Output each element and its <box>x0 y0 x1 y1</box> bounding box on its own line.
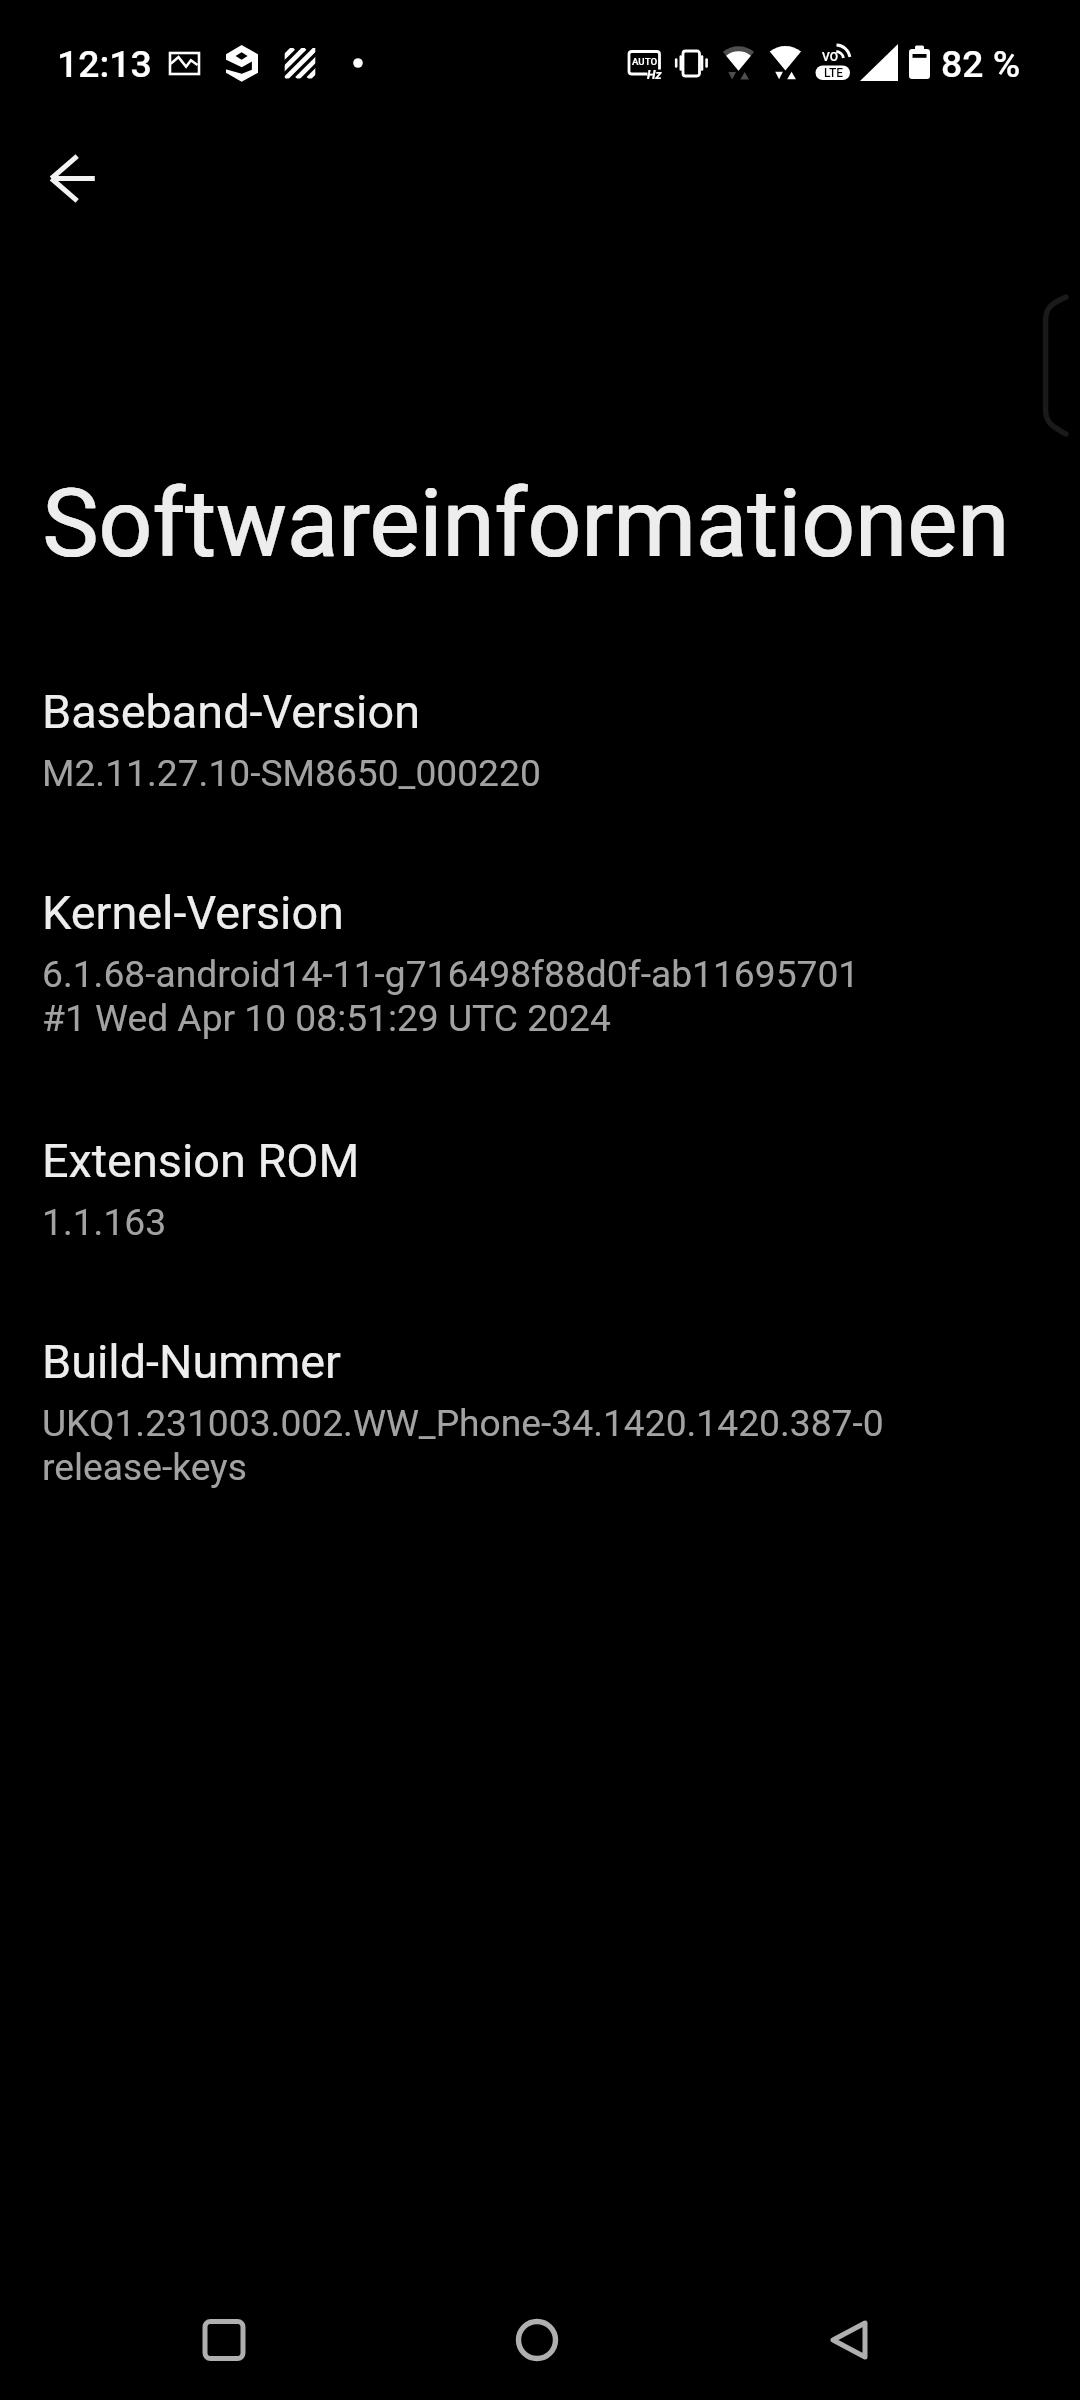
staticText: UKQ1.231003.002.WW_Phone-34.1420.1420.38… <box>42 1401 884 1445</box>
button[interactable]: Back <box>30 136 116 222</box>
staticText: Softwareinformationen <box>43 468 1010 579</box>
button[interactable]: Recent apps <box>154 2270 294 2400</box>
staticText: 12:13 <box>57 42 152 86</box>
staticText: LTE <box>824 66 844 80</box>
staticText: release-keys <box>42 1445 247 1489</box>
button[interactable]: Kernel-Version <box>0 864 1080 1062</box>
staticText: Kernel-Version <box>42 886 344 941</box>
staticText: Baseband-Version <box>42 685 421 740</box>
staticText: 6.1.68-android14-11-g716498f88d0f-ab1169… <box>42 952 860 996</box>
button[interactable]: Home <box>467 2270 607 2400</box>
staticText: Extension ROM <box>42 1134 360 1189</box>
button[interactable]: Extension ROM <box>0 1112 1080 1266</box>
staticText: Softwareinformationen <box>42 468 1009 579</box>
staticText: #1 Wed Apr 10 08:51:29 UTC 2024 <box>42 996 611 1040</box>
staticText: 1.1.163 <box>42 1200 167 1244</box>
button[interactable]: Baseband-Version <box>0 663 1080 817</box>
button[interactable]: Build-Nummer <box>0 1313 1080 1511</box>
staticText: VO <box>822 50 838 64</box>
staticText: Build-Nummer <box>42 1335 341 1390</box>
staticText: AUTO <box>632 56 658 67</box>
staticText: Hz <box>647 67 662 82</box>
button[interactable]: Back <box>779 2270 919 2400</box>
staticText: M2.11.27.10-SM8650_000220 <box>42 751 541 795</box>
staticText: 82 % <box>941 42 1021 86</box>
